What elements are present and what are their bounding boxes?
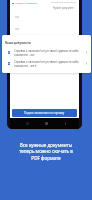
staticText: Ваши документы <box>5 41 32 45</box>
staticText: Подать заявление на справку <box>24 111 65 115</box>
staticText: Справка о наличии (отсутствии) судимости… <box>14 60 84 64</box>
button[interactable]: Home <box>44 121 48 126</box>
button[interactable]: Справка о наличии (отсутствии) судимости… <box>8 49 88 56</box>
button[interactable]: Recent apps <box>25 121 29 126</box>
staticText: судимости - англ <box>14 64 37 67</box>
staticText: Справка о судимости <box>15 2 38 5</box>
button[interactable]: Подать заявление на справку <box>12 109 77 117</box>
staticText: Нужен документ <box>53 6 74 10</box>
button[interactable]: Back <box>63 121 67 126</box>
staticText: Способ получения услуги <box>51 1 76 4</box>
staticText: Все нужные документы теперь можно скачат… <box>19 142 73 162</box>
button[interactable]: Справка о наличии (отсутствии) судимости… <box>8 60 88 67</box>
staticText: Справка о наличии (отсутствии) судимости… <box>14 49 84 53</box>
staticText: судимости - рус <box>14 53 35 56</box>
